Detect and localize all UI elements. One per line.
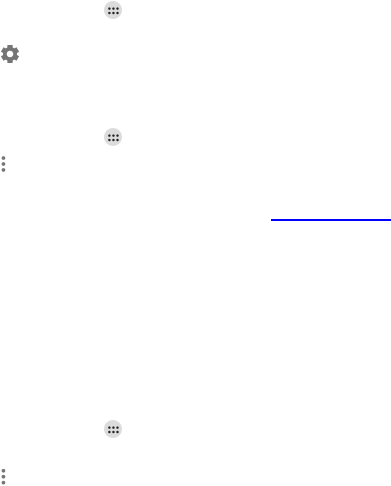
button[interactable]: Apps — [104, 128, 122, 146]
button[interactable]: More options — [2, 156, 5, 172]
button[interactable]: Apps — [104, 420, 122, 438]
button[interactable]: Apps — [104, 1, 122, 19]
button[interactable]: More options — [2, 469, 5, 484]
button[interactable]: Settings — [1, 45, 19, 63]
